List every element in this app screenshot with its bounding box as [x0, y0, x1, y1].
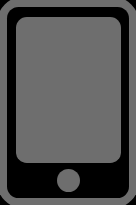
button[interactable]: Phone	[0, 0, 136, 205]
